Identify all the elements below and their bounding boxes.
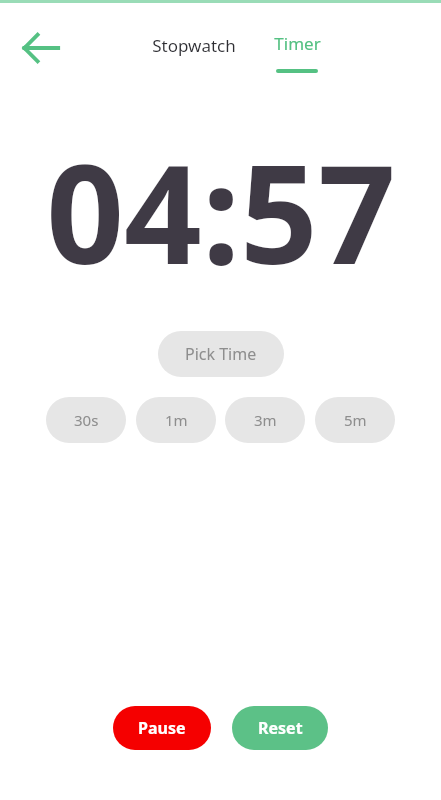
staticText: 3m [254, 410, 277, 430]
staticText: 30s [74, 410, 99, 430]
staticText: 5m [344, 410, 367, 430]
button[interactable]: Timer [262, 22, 332, 76]
button[interactable]: Reset [232, 706, 328, 750]
button[interactable]: 1m [136, 397, 216, 443]
staticText: Reset [258, 717, 303, 739]
button[interactable]: Back [14, 21, 68, 75]
button[interactable]: Pause [113, 706, 211, 750]
staticText: Timer [274, 32, 321, 55]
staticText: Stopwatch [152, 34, 236, 57]
button[interactable]: 5m [315, 397, 395, 443]
staticText: 04:57 [46, 119, 396, 304]
staticText: Pick Time [185, 343, 257, 365]
staticText: Pause [138, 717, 186, 739]
button[interactable]: Pick Time [158, 331, 284, 377]
button[interactable]: 3m [225, 397, 305, 443]
button[interactable]: 30s [46, 397, 126, 443]
button[interactable]: Stopwatch [139, 22, 249, 68]
staticText: 1m [165, 410, 188, 430]
